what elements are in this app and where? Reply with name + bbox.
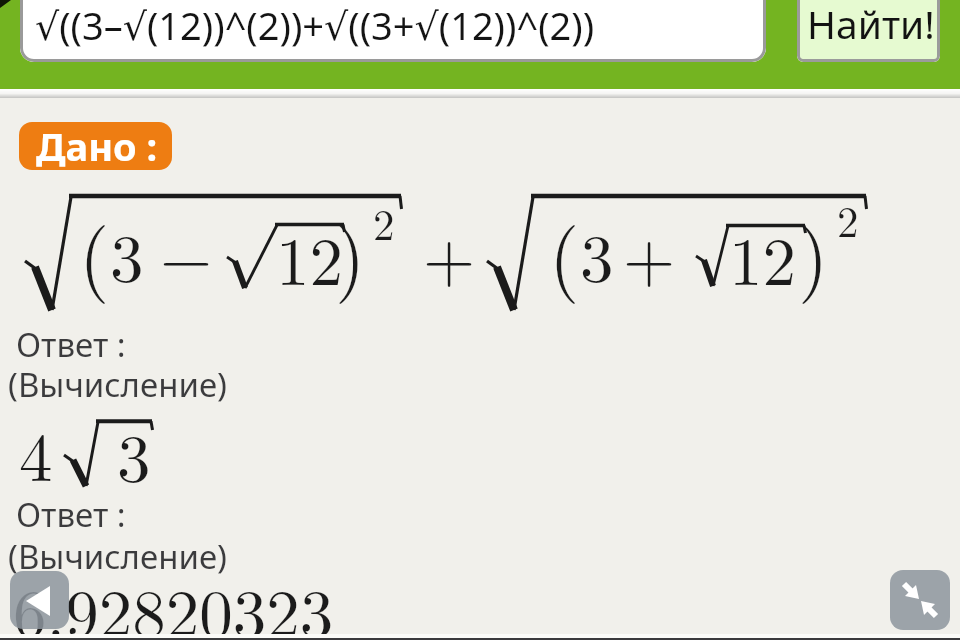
staticText: (Вычисление) [8, 534, 227, 579]
staticText: 2 [837, 189, 859, 250]
staticText: 6.92820323 [13, 561, 334, 640]
staticText: ) [798, 196, 829, 307]
button[interactable] [20, 0, 766, 62]
staticText: 12 [276, 209, 343, 304]
staticText: ) [335, 196, 366, 307]
staticText: + [423, 205, 476, 300]
staticText: 12 [729, 209, 796, 304]
button[interactable] [10, 571, 69, 629]
staticText: Ответ : [16, 322, 126, 367]
staticText: ( [79, 196, 110, 307]
staticText: ( [549, 196, 580, 307]
staticText: 4 [19, 405, 53, 500]
staticText: − [160, 205, 213, 300]
staticText: 3 [110, 206, 144, 301]
staticText: (Вычисление) [8, 362, 227, 407]
staticText: Найти! [807, 0, 935, 50]
staticText: + [623, 205, 676, 300]
button[interactable] [797, 0, 940, 62]
staticText: √((3–√(12))^(2))+√((3+√(12))^(2)) [35, 0, 595, 51]
staticText: 3 [117, 406, 151, 501]
staticText: 2 [373, 192, 395, 253]
button[interactable] [890, 570, 950, 630]
staticText: 3 [580, 206, 614, 301]
staticText: Ответ : [16, 492, 126, 537]
staticText: Дано : [36, 120, 158, 172]
